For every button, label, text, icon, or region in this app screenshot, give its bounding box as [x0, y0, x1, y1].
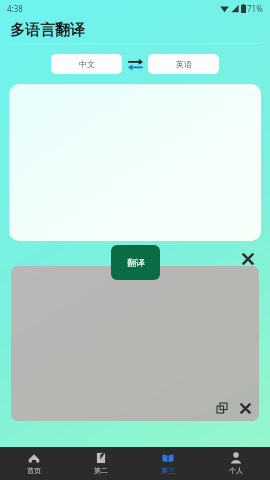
staticText: 翻译 — [127, 257, 145, 268]
button[interactable]: Clear result — [235, 398, 255, 418]
button[interactable]: Swap languages — [122, 53, 148, 75]
button[interactable]: 英语 — [148, 54, 219, 74]
staticText: 多语言翻译 — [10, 21, 85, 40]
staticText: 4:38 — [7, 3, 23, 14]
staticText: 英语 — [176, 59, 192, 69]
button[interactable]: 第二 — [67, 447, 134, 480]
staticText: 第三 — [161, 466, 175, 475]
button[interactable]: 中文 — [51, 54, 122, 74]
staticText: 第二 — [94, 466, 108, 475]
button[interactable]: 个人 — [202, 447, 270, 480]
button[interactable]: Copy — [212, 398, 232, 418]
button[interactable]: 翻译 — [111, 245, 160, 280]
button[interactable]: 首页 — [0, 447, 67, 480]
staticText: 个人 — [229, 466, 243, 475]
button[interactable]: Copy — [11, 266, 259, 421]
staticText: 中文 — [79, 59, 95, 69]
staticText: 首页 — [27, 466, 41, 475]
button[interactable] — [9, 84, 261, 241]
button[interactable]: Close — [236, 247, 260, 271]
staticText: 71% — [247, 3, 263, 14]
button[interactable]: 第三 — [134, 447, 202, 480]
